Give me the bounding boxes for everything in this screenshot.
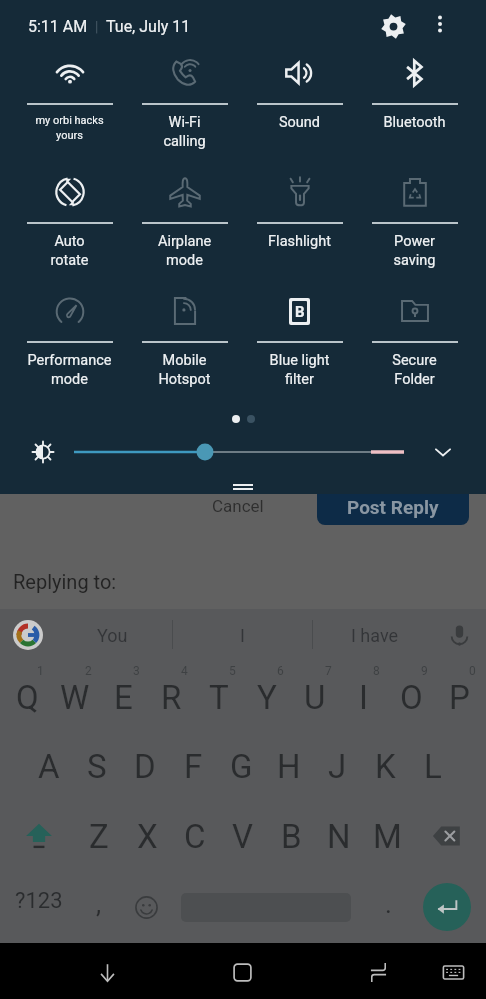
- staticText: Wi-Fi calling: [127, 114, 242, 150]
- button[interactable]: H: [265, 731, 313, 801]
- staticText: 5:11 AM: [28, 17, 88, 36]
- staticText: Cancel: [212, 496, 264, 516]
- button[interactable]: Airplane mode: [127, 171, 242, 290]
- button[interactable]: U: [291, 661, 339, 731]
- button[interactable]: K: [361, 731, 409, 801]
- button[interactable]: Z: [75, 801, 123, 871]
- staticText: 0: [469, 664, 476, 678]
- button[interactable]: Backspace: [411, 801, 483, 871]
- button[interactable]: my orbi hacks yours: [12, 52, 127, 171]
- button[interactable]: You: [52, 609, 172, 661]
- staticText: 6: [277, 664, 284, 678]
- button[interactable]: L: [409, 731, 457, 801]
- button[interactable]: Secure Folder: [357, 290, 472, 409]
- button[interactable]: Power saving: [357, 171, 472, 290]
- staticText: 2: [85, 664, 92, 678]
- button[interactable]: A: [25, 731, 73, 801]
- staticText: 1: [37, 664, 44, 678]
- staticText: Post Reply: [347, 496, 439, 518]
- button[interactable]: Cancel: [190, 490, 286, 520]
- staticText: B: [281, 817, 302, 856]
- button[interactable]: Expand: [425, 434, 461, 470]
- staticText: Sound: [242, 114, 357, 131]
- button[interactable]: Switch keyboard: [425, 944, 481, 999]
- button[interactable]: Y: [243, 661, 291, 731]
- staticText: I: [240, 625, 245, 646]
- button[interactable]: Enter: [412, 871, 482, 943]
- staticText: J: [328, 747, 347, 786]
- staticText: F: [184, 747, 203, 786]
- button[interactable]: J: [313, 731, 361, 801]
- button[interactable]: E: [99, 661, 147, 731]
- button[interactable]: Google: [4, 609, 52, 661]
- button[interactable]: Bluetooth: [357, 52, 472, 171]
- staticText: H: [277, 747, 301, 786]
- staticText: Y: [257, 678, 277, 717]
- button[interactable]: Mobile Hotspot: [127, 290, 242, 409]
- button[interactable]: T: [195, 661, 243, 731]
- staticText: Bluetooth: [357, 114, 472, 131]
- staticText: B: [295, 303, 305, 321]
- staticText: E: [114, 678, 133, 717]
- button[interactable]: Settings: [371, 4, 415, 48]
- staticText: A: [38, 747, 60, 786]
- button[interactable]: Post Reply: [317, 462, 469, 525]
- staticText: M: [373, 817, 402, 856]
- button[interactable]: Recents: [350, 944, 406, 999]
- staticText: I: [359, 678, 368, 717]
- button[interactable]: Home: [214, 944, 270, 999]
- button[interactable]: Wi-Fi calling: [127, 52, 242, 171]
- staticText: my orbi hacks yours: [12, 114, 127, 142]
- button[interactable]: V: [219, 801, 267, 871]
- button[interactable]: O: [387, 661, 435, 731]
- staticText: 3: [133, 664, 140, 678]
- button[interactable]: ?123: [2, 871, 76, 943]
- button[interactable]: M: [363, 801, 411, 871]
- staticText: Flashlight: [242, 233, 357, 250]
- button[interactable]: F: [169, 731, 217, 801]
- button[interactable]: Shift: [3, 801, 75, 871]
- staticText: G: [230, 747, 253, 786]
- button[interactable]: W: [51, 661, 99, 731]
- button[interactable]: C: [171, 801, 219, 871]
- button[interactable]: Performance mode: [12, 290, 127, 409]
- button[interactable]: R: [147, 661, 195, 731]
- button[interactable]: Voice input: [436, 609, 482, 661]
- button[interactable]: Space: [171, 871, 361, 943]
- button[interactable]: D: [121, 731, 169, 801]
- button[interactable]: Emoji: [122, 871, 170, 943]
- button[interactable]: S: [73, 731, 121, 801]
- staticText: 7: [325, 664, 332, 678]
- button[interactable]: P: [435, 661, 483, 731]
- staticText: P: [449, 678, 470, 717]
- staticText: Z: [89, 817, 109, 856]
- button[interactable]: X: [123, 801, 171, 871]
- button[interactable]: Auto rotate: [12, 171, 127, 290]
- button[interactable]: More options: [420, 4, 460, 44]
- staticText: O: [400, 678, 423, 717]
- button[interactable]: B: [242, 290, 357, 409]
- staticText: S: [87, 747, 107, 786]
- button[interactable]: Hide keyboard: [79, 944, 135, 999]
- staticText: T: [209, 678, 229, 717]
- staticText: C: [184, 817, 206, 856]
- staticText: Replying to:: [13, 570, 117, 593]
- staticText: |: [88, 19, 106, 35]
- button[interactable]: G: [217, 731, 265, 801]
- button[interactable]: Sound: [242, 52, 357, 171]
- staticText: L: [424, 747, 442, 786]
- button[interactable]: I: [339, 661, 387, 731]
- button[interactable]: I have: [313, 609, 436, 661]
- button[interactable]: N: [315, 801, 363, 871]
- staticText: V: [232, 817, 254, 856]
- button[interactable]: Flashlight: [242, 171, 357, 290]
- staticText: I have: [351, 625, 399, 646]
- staticText: X: [137, 817, 158, 856]
- button[interactable]: B: [267, 801, 315, 871]
- staticText: W: [60, 678, 90, 717]
- button[interactable]: Q: [3, 661, 51, 731]
- staticText: 9: [421, 664, 428, 678]
